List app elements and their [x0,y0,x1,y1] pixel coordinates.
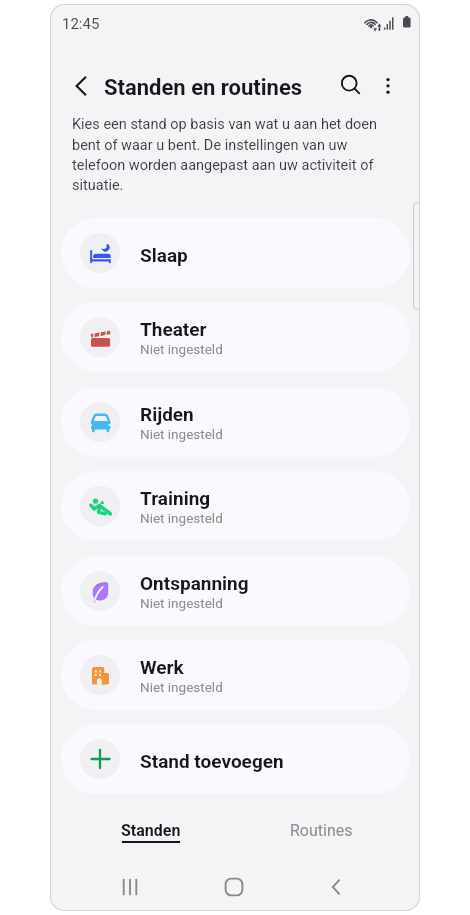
staticText: Ontspanning [140,572,249,594]
staticText: Niet ingesteld [140,510,223,526]
button[interactable]: Standen [66,810,236,856]
button[interactable]: Stand toevoegen [61,724,410,794]
button[interactable]: Back [62,65,104,107]
staticText: Niet ingesteld [140,595,223,611]
button[interactable]: Theater [61,302,410,372]
staticText: Standen en routines [104,75,303,101]
button[interactable]: More options [367,65,409,107]
staticText: Niet ingesteld [140,679,223,695]
button[interactable]: Rijden [61,387,410,457]
button[interactable]: Werk [61,640,410,710]
button[interactable]: Back [317,867,357,907]
staticText: Routines [290,821,353,840]
button[interactable]: Recents [110,867,150,907]
staticText: Niet ingesteld [140,426,223,442]
staticText: Slaap [140,244,188,266]
staticText: Kies een stand op basis van wat u aan he… [72,116,386,194]
button[interactable]: Ontspanning [61,556,410,626]
button[interactable]: Routines [236,810,406,856]
staticText: Theater [140,318,207,340]
staticText: 12:45 [62,15,100,33]
staticText: Werk [140,656,184,678]
staticText: Training [140,487,211,509]
button[interactable]: Search [330,64,372,106]
staticText: Standen [121,821,181,840]
button[interactable]: Home [214,867,254,907]
staticText: Stand toevoegen [140,750,284,772]
button[interactable]: Slaap [61,218,410,288]
staticText: Niet ingesteld [140,341,223,357]
button[interactable]: Training [61,471,410,541]
staticText: Rijden [140,403,194,425]
